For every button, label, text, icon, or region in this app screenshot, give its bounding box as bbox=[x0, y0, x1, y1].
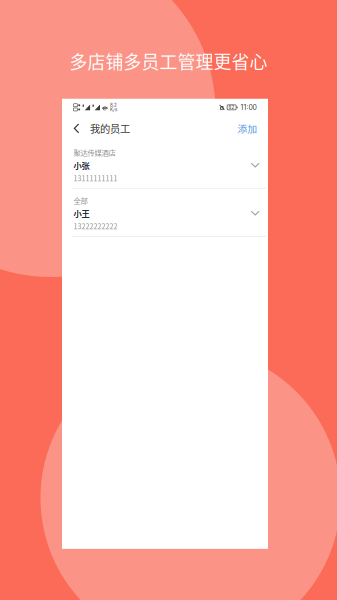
staticText: K/s bbox=[110, 107, 117, 112]
staticText: 13222222222 bbox=[73, 221, 117, 231]
staticText: 小张 bbox=[73, 159, 89, 171]
staticText: 82 bbox=[229, 105, 235, 110]
staticText: 我的员工 bbox=[90, 121, 130, 136]
button[interactable]: 添加 bbox=[232, 116, 262, 141]
staticText: 8.2 bbox=[110, 102, 117, 108]
button[interactable]: Back bbox=[63, 116, 90, 141]
staticText: 多店铺多员工管理更省心 bbox=[69, 48, 267, 74]
staticText: 聚达传媒酒店 bbox=[73, 147, 115, 157]
staticText: 全部 bbox=[73, 195, 87, 205]
staticText: 13111111111 bbox=[73, 173, 117, 183]
staticText: 小王 bbox=[73, 207, 89, 219]
staticText: 11:00 bbox=[240, 103, 256, 112]
button[interactable]: 聚达传媒酒店 bbox=[62, 141, 268, 189]
staticText: 添加 bbox=[237, 121, 257, 135]
button[interactable]: 全部 bbox=[62, 189, 268, 237]
